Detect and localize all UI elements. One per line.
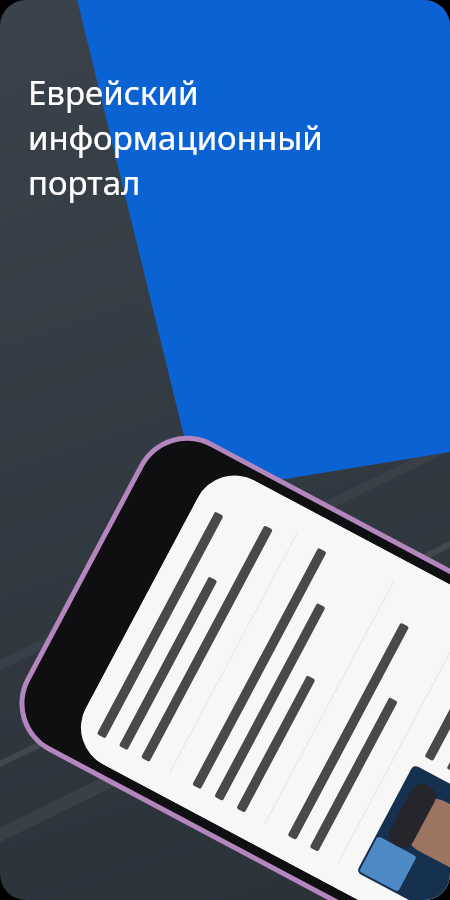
button[interactable]: Еврейский	[0, 0, 450, 900]
staticText: Еврейский	[28, 70, 199, 115]
staticText: портал	[28, 160, 141, 205]
button[interactable]: Еврейский	[28, 70, 323, 205]
staticText: информационный	[28, 115, 323, 160]
other: App preview	[0, 0, 450, 900]
